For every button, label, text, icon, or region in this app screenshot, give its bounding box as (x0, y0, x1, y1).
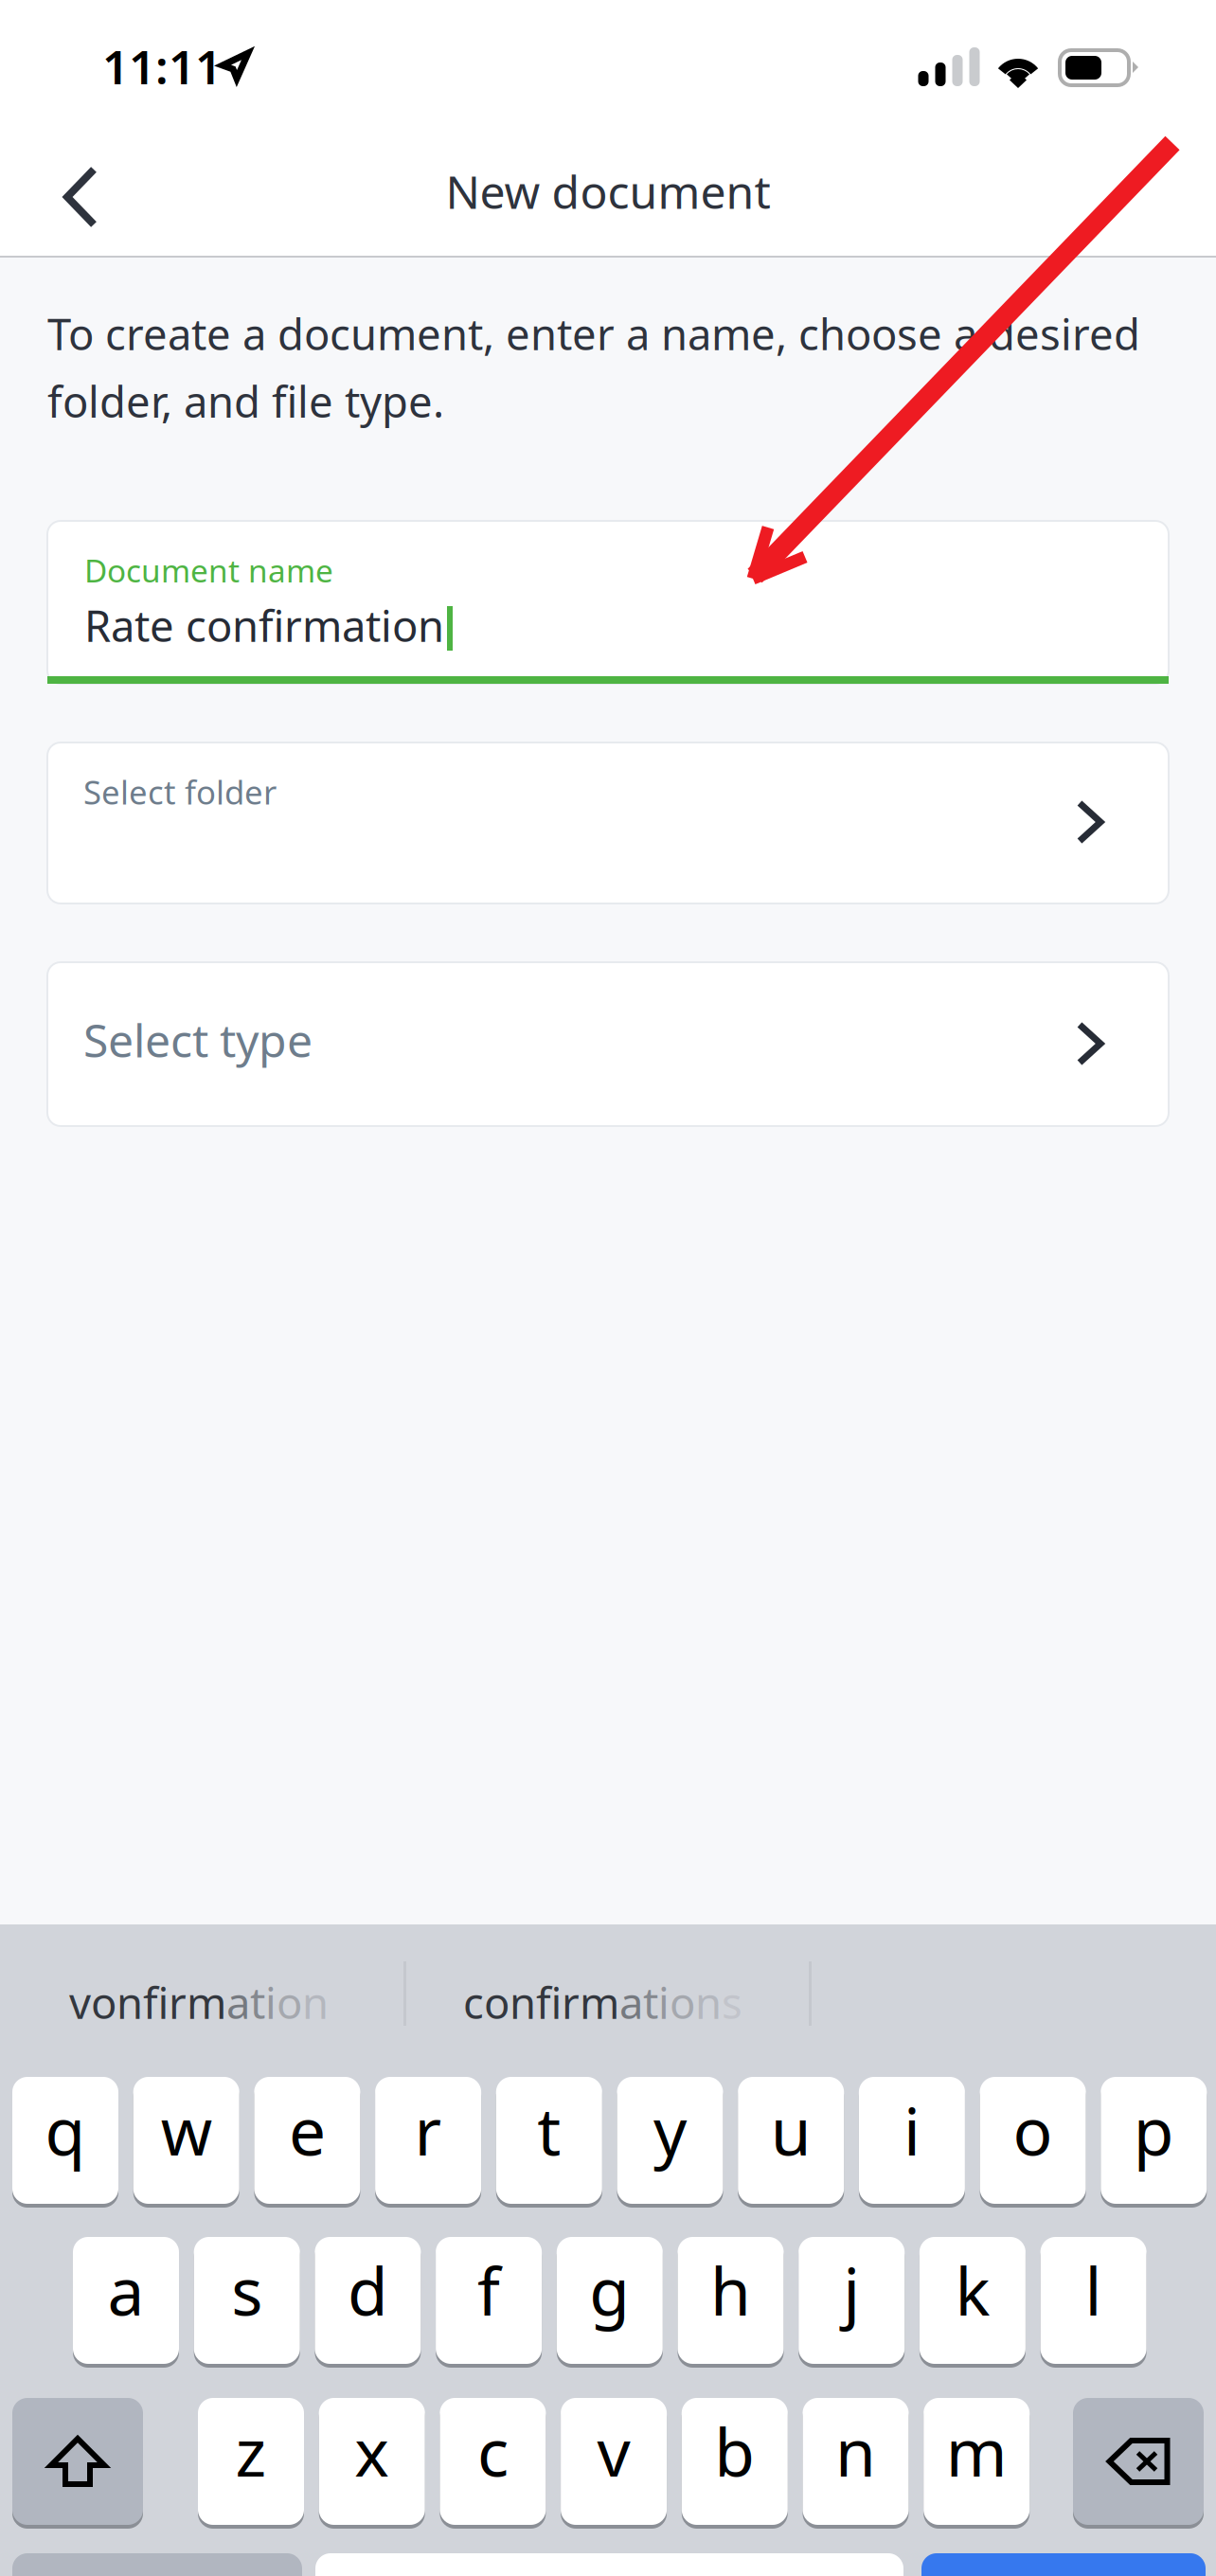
staticText: s (231, 2246, 263, 2334)
staticText: g (589, 2246, 630, 2334)
staticText: a (107, 2246, 144, 2334)
staticText: To create a document, enter a name, choo… (47, 305, 1140, 429)
staticText: n (302, 1974, 329, 2031)
button[interactable]: i (859, 2075, 965, 2206)
button[interactable]: g (557, 2235, 663, 2366)
button[interactable]: f (436, 2235, 542, 2366)
staticText: v (597, 2407, 630, 2495)
staticText: e (289, 2086, 326, 2174)
button[interactable]: d (315, 2235, 421, 2366)
staticText: 11:11 (102, 35, 222, 97)
staticText: j (843, 2246, 860, 2334)
button[interactable]: Delete (1073, 2396, 1204, 2527)
staticText: i (658, 1974, 670, 2031)
button[interactable]: space (315, 2551, 903, 2576)
button[interactable]: c (440, 2396, 546, 2527)
staticText: u (771, 2086, 811, 2174)
button[interactable]: b (682, 2396, 788, 2527)
staticText: confirm (463, 1974, 619, 2031)
button[interactable]: x (319, 2396, 425, 2527)
staticText: t (643, 1974, 658, 2031)
staticText: m (946, 2407, 1007, 2495)
staticText: c (477, 2407, 508, 2495)
button[interactable]: k (919, 2235, 1026, 2366)
staticText: t (537, 2086, 561, 2174)
staticText: h (710, 2246, 751, 2334)
button[interactable]: Back (0, 122, 163, 255)
staticText: i (903, 2086, 920, 2174)
button[interactable]: n (803, 2396, 909, 2527)
button[interactable]: r (375, 2075, 481, 2206)
staticText: t (250, 1974, 265, 2031)
button[interactable]: l (1040, 2235, 1146, 2366)
staticText: i (265, 1974, 277, 2031)
staticText: k (955, 2246, 990, 2334)
staticText: f (477, 2246, 500, 2334)
button[interactable]: Select type (47, 962, 1169, 1126)
staticText: s (722, 1974, 742, 2031)
staticText: x (354, 2407, 389, 2495)
button[interactable]: e (254, 2075, 360, 2206)
staticText: l (1085, 2246, 1102, 2334)
button[interactable]: z (198, 2396, 304, 2527)
staticText: a (226, 1974, 250, 2031)
button[interactable]: a (73, 2235, 179, 2366)
staticText: q (45, 2086, 86, 2174)
staticText: n (695, 1974, 722, 2031)
staticText: b (714, 2407, 755, 2495)
button[interactable]: Shift (12, 2396, 143, 2527)
button[interactable]: 123 (12, 2551, 302, 2576)
staticText: o (1013, 2086, 1053, 2174)
staticText: y (653, 2086, 687, 2174)
staticText: a (619, 1974, 643, 2031)
button[interactable]: h (678, 2235, 784, 2366)
button[interactable]: u (738, 2075, 844, 2206)
staticText: o (277, 1974, 302, 2031)
button[interactable]: return (921, 2551, 1206, 2576)
button[interactable]: j (799, 2235, 905, 2366)
staticText: vonfirm (69, 1974, 226, 2031)
button[interactable]: v (561, 2396, 667, 2527)
button[interactable]: y (617, 2075, 723, 2206)
button[interactable]: m (924, 2396, 1030, 2527)
staticText: Document name (84, 549, 333, 591)
staticText: Select folder (83, 770, 277, 814)
staticText: z (235, 2407, 267, 2495)
button[interactable]: o (980, 2075, 1086, 2206)
staticText: o (670, 1974, 695, 2031)
staticText: Select type (83, 1010, 313, 1070)
button[interactable]: Select folder (47, 742, 1169, 903)
staticText: p (1133, 2086, 1174, 2174)
staticText: New document (446, 161, 770, 221)
staticText: Rate confirmation (84, 597, 444, 654)
button[interactable]: s (194, 2235, 300, 2366)
staticText: r (414, 2086, 442, 2174)
staticText: n (835, 2407, 876, 2495)
staticText: d (347, 2246, 388, 2334)
button[interactable]: q (12, 2075, 118, 2206)
staticText: w (161, 2086, 212, 2174)
button[interactable]: t (496, 2075, 602, 2206)
button[interactable]: w (133, 2075, 239, 2206)
button[interactable]: p (1101, 2075, 1207, 2206)
